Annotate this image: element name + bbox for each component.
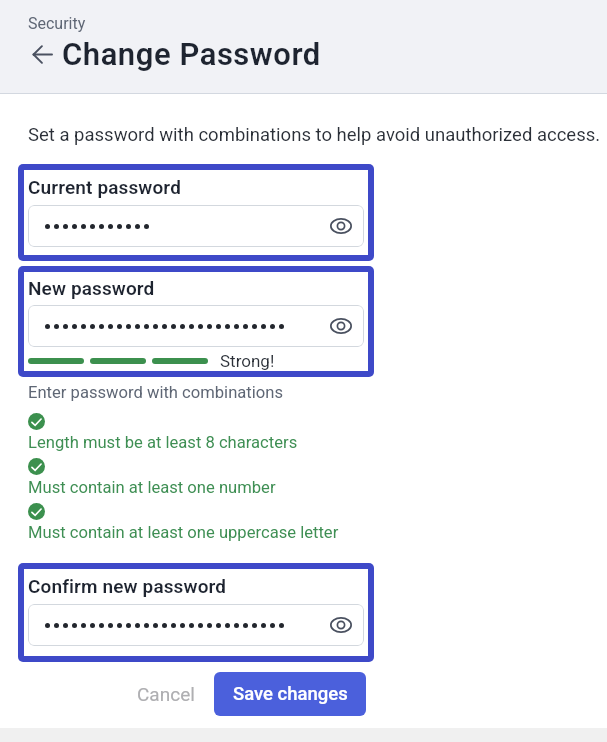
button[interactable]: Show password [28, 205, 364, 247]
button[interactable]: Show password [28, 604, 364, 646]
button[interactable]: Save changes [214, 672, 366, 716]
staticText: Must contain at least one number [28, 478, 276, 497]
staticText: New password [28, 277, 155, 299]
staticText: Current password [28, 176, 181, 198]
button[interactable]: Show password [28, 305, 364, 347]
staticText: Security [28, 14, 86, 33]
button[interactable]: Cancel [127, 673, 205, 715]
staticText: Length must be at least 8 characters [28, 433, 298, 452]
staticText: Enter password with combinations [28, 383, 283, 402]
staticText: Must contain at least one uppercase lett… [28, 523, 339, 542]
staticText: Set a password with combinations to help… [28, 124, 601, 146]
staticText: Change Password [62, 36, 321, 72]
staticText: Strong! [220, 351, 275, 371]
button[interactable]: Show password [329, 314, 353, 338]
button[interactable]: Show password [329, 214, 353, 238]
staticText: Cancel [137, 683, 195, 705]
button[interactable]: Back [31, 43, 53, 65]
staticText: Confirm new password [28, 575, 227, 597]
button[interactable]: Show password [329, 613, 353, 637]
staticText: Save changes [233, 683, 348, 705]
